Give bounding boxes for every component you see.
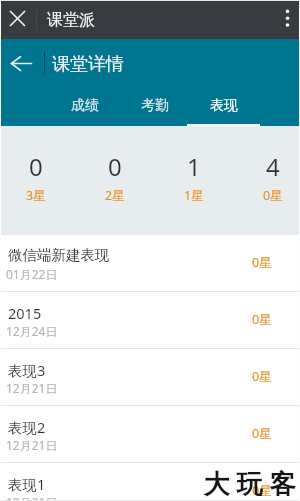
staticText: 0星	[252, 254, 272, 271]
staticText: 2015	[8, 303, 42, 323]
staticText: 表现2	[8, 417, 46, 437]
staticText: 表现3	[8, 360, 46, 380]
button[interactable]: 表现3	[0, 349, 300, 406]
button[interactable]: 表现1	[0, 463, 300, 501]
button[interactable]: 2015	[0, 292, 300, 349]
staticText: 0星	[252, 311, 272, 328]
button[interactable]: 成绩	[50, 87, 120, 126]
button[interactable]: 表现2	[0, 406, 300, 463]
button[interactable]: Back	[0, 39, 38, 85]
staticText: 4	[266, 150, 280, 183]
staticText: 12月21日	[6, 380, 58, 396]
button[interactable]: 考勤	[120, 87, 189, 126]
staticText: 1	[187, 150, 201, 183]
button[interactable]: 0	[0, 126, 75, 235]
staticText: 2星	[105, 187, 125, 204]
staticText: 01月22日	[6, 266, 58, 282]
staticText: 12月21日	[6, 494, 58, 501]
staticText: 表现	[210, 97, 238, 115]
staticText: 成绩	[71, 97, 99, 115]
staticText: 3星	[26, 187, 46, 204]
staticText: 大玩客	[200, 468, 299, 501]
staticText: 0星	[263, 187, 283, 204]
button[interactable]: 微信端新建表现	[0, 235, 300, 292]
button[interactable]: 1	[154, 126, 233, 235]
staticText: 0	[108, 150, 122, 183]
staticText: 12月21日	[6, 437, 58, 453]
staticText: 1星	[184, 187, 204, 204]
button[interactable]: 4	[233, 126, 300, 235]
staticText: 考勤	[141, 97, 169, 115]
staticText: 课堂详情	[52, 53, 124, 76]
staticText: 微信端新建表现	[8, 246, 110, 264]
button[interactable]: 0	[75, 126, 154, 235]
button[interactable]: More options	[268, 0, 300, 39]
staticText: 表现1	[8, 474, 46, 494]
staticText: 课堂派	[47, 10, 95, 30]
button[interactable]: Close	[0, 0, 34, 39]
button[interactable]: 表现	[189, 87, 258, 126]
staticText: 12月24日	[6, 323, 58, 339]
staticText: 0星	[252, 425, 272, 442]
staticText: 0星	[252, 482, 272, 499]
staticText: 0星	[252, 368, 272, 385]
staticText: 0	[29, 150, 43, 183]
